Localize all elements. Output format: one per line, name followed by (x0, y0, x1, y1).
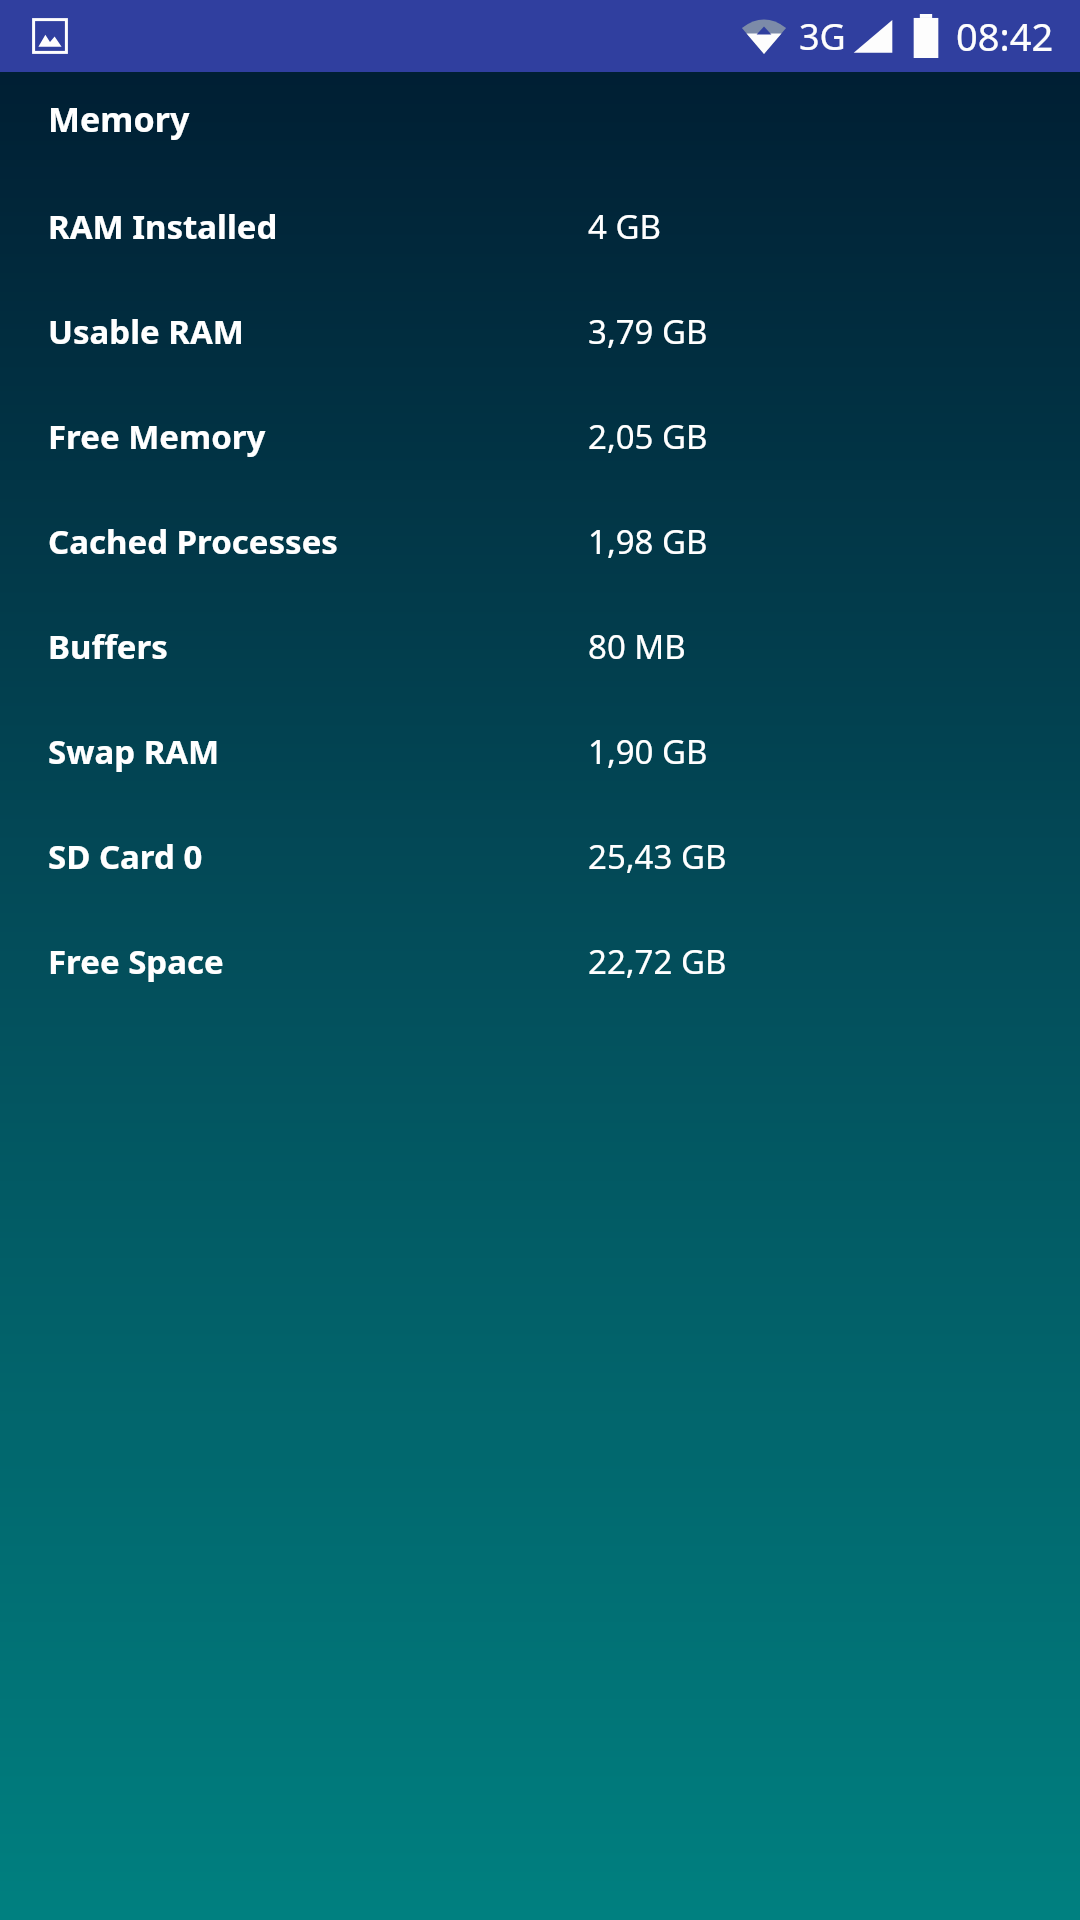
button[interactable]: Free Memory (0, 384, 1080, 489)
other: Screenshot captured (30, 16, 70, 56)
staticText: Free Space (48, 939, 588, 984)
staticText: Cached Processes (48, 519, 588, 564)
button[interactable]: Free Space (0, 909, 1080, 1014)
staticText: 3G (799, 12, 846, 61)
staticText: 1,90 GB (588, 729, 708, 774)
staticText: 80 MB (588, 624, 686, 669)
staticText: Usable RAM (48, 309, 588, 354)
staticText: Swap RAM (48, 729, 588, 774)
staticText: 4 GB (588, 204, 661, 249)
staticText: 3,79 GB (588, 309, 708, 354)
button[interactable]: Swap RAM (0, 699, 1080, 804)
staticText: Memory (48, 96, 190, 142)
staticText: SD Card 0 (48, 834, 588, 879)
button[interactable]: RAM Installed (0, 174, 1080, 279)
staticText: Free Memory (48, 414, 588, 459)
button[interactable]: Memory (0, 92, 1080, 146)
staticText: Buffers (48, 624, 588, 669)
staticText: 08:42 (956, 10, 1054, 62)
button[interactable]: SD Card 0 (0, 804, 1080, 909)
button[interactable]: Usable RAM (0, 279, 1080, 384)
button[interactable]: Cached Processes (0, 489, 1080, 594)
staticText: 22,72 GB (588, 939, 727, 984)
staticText: RAM Installed (48, 204, 588, 249)
staticText: 1,98 GB (588, 519, 708, 564)
staticText: 2,05 GB (588, 414, 708, 459)
staticText: 25,43 GB (588, 834, 727, 879)
button[interactable]: Buffers (0, 594, 1080, 699)
